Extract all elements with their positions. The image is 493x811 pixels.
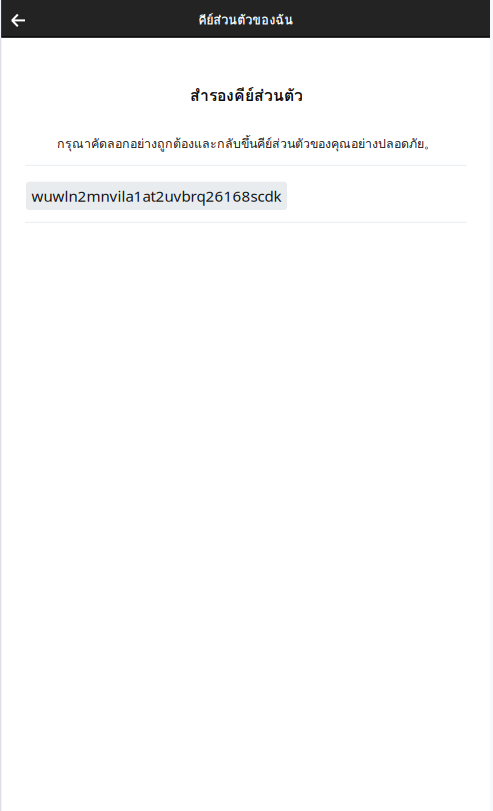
staticText: สำรองคีย์ส่วนตัว (190, 83, 303, 108)
button[interactable]: Back (1, 0, 45, 36)
staticText: wuwln2mnvila1at2uvbrq26168scdk (31, 186, 281, 206)
staticText: กรุณาคัดลอกอย่างถูกต้องและกลับขึ้นคีย์ส่… (57, 134, 436, 153)
button[interactable]: wuwln2mnvila1at2uvbrq26168scdk (26, 182, 287, 210)
staticText: คีย์ส่วนตัวของฉัน (198, 10, 293, 30)
